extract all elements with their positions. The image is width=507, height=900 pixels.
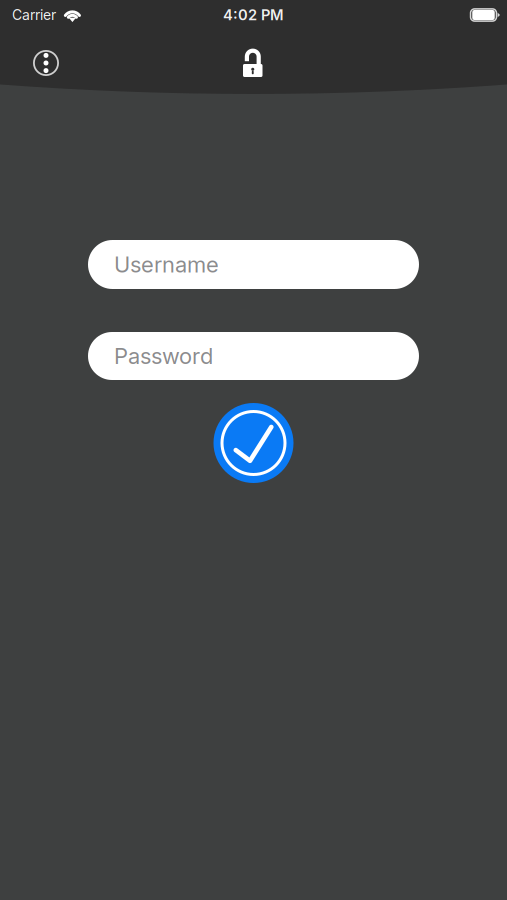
button[interactable]: Username [88, 240, 419, 289]
button[interactable]: Sign in [213, 403, 293, 483]
button[interactable]: More options [23, 41, 69, 85]
staticText: Password [114, 343, 213, 369]
staticText: Carrier [12, 6, 56, 23]
staticText: 4:02 PM [223, 6, 284, 24]
button[interactable]: Password [88, 332, 419, 380]
button[interactable]: Unlocked [231, 40, 275, 84]
staticText: Username [114, 251, 219, 278]
